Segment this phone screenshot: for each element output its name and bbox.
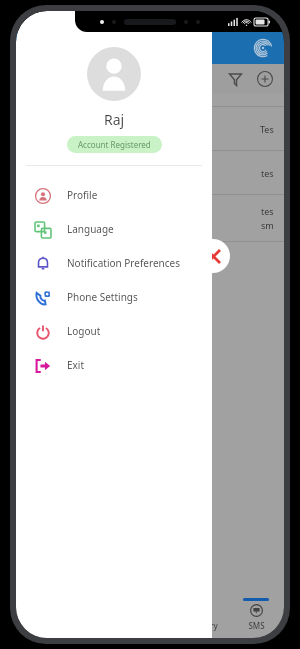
button[interactable]: Filter [222,66,248,92]
staticText: Raj [104,110,125,129]
staticText: sm [261,219,274,231]
staticText: Tes [260,123,274,135]
staticText: Notification Preferences [67,256,180,270]
staticText: Exit [67,358,85,372]
button[interactable]: Close [196,239,230,273]
staticText: SMS [248,620,265,631]
staticText: mohan [26,165,64,180]
button[interactable]: mohan [16,151,284,194]
staticText: Account Registered [78,139,151,150]
button[interactable]: Notification Preferences [16,246,212,280]
button[interactable]: Language [16,212,212,246]
button[interactable]: Exit [16,348,212,382]
button[interactable]: History [174,592,234,638]
button[interactable]: SMS [234,592,278,638]
button[interactable]: Phone Settings [16,280,212,314]
button[interactable]: Add [252,66,278,92]
staticText: Language [67,222,114,236]
button[interactable]: tes [16,195,284,241]
staticText: Phone Settings [67,290,138,304]
staticText: tes [261,205,274,217]
staticText: tes [261,167,274,179]
staticText: History [190,620,218,631]
staticText: Profile [67,188,98,202]
button[interactable]: Profile [16,178,212,212]
button[interactable]: Fingerprint [250,35,276,61]
staticText: Logout [67,324,101,338]
button[interactable]: Harry [16,107,284,150]
button[interactable]: Logout [16,314,212,348]
